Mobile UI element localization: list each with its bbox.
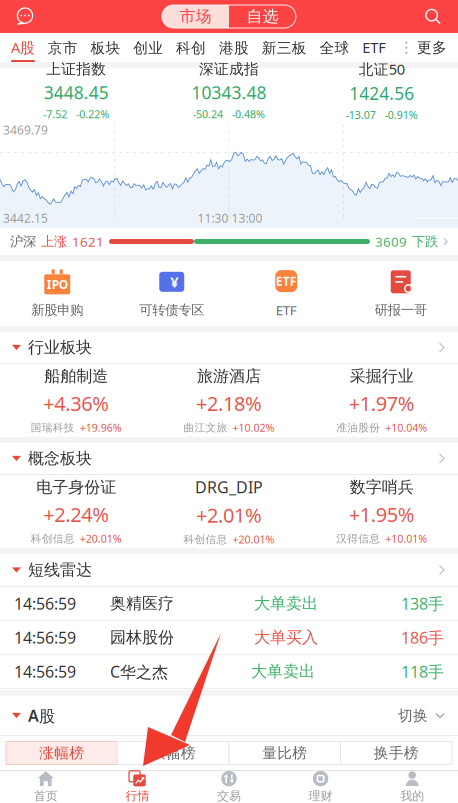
staticText: -0.91% [385,108,418,122]
staticText: 大单卖出 [251,662,315,681]
staticText: 上证指数 [46,60,106,78]
staticText: 首页 [34,789,58,803]
button[interactable]: 换手榜 [340,741,452,764]
button[interactable]: Messages [8,0,42,33]
staticText: 186手 [401,627,444,648]
button[interactable]: 交易 [183,771,275,803]
staticText: 自选 [246,7,278,26]
button[interactable]: A股 [11,33,35,62]
button[interactable]: 沪深 [0,228,458,255]
button[interactable]: 数字哨兵 [305,475,458,548]
staticText: 概念板块 [28,449,92,468]
staticText: 港股 [219,39,249,57]
button[interactable]: 涨幅榜 [6,741,117,764]
button[interactable]: ETF [229,268,343,319]
button[interactable]: 旅游酒店 [153,364,305,437]
staticText: 上涨 [41,233,67,250]
button[interactable]: 我的 [366,771,458,803]
button[interactable]: A股 [0,696,458,736]
button[interactable]: 首页 [0,771,92,803]
button[interactable]: 量比榜 [229,741,340,764]
staticText: ETF [362,37,386,57]
button[interactable]: 北证50 [305,68,458,120]
staticText: 曲江文旅 [183,421,227,434]
button[interactable]: 14:56:59 [0,655,458,689]
staticText: 市场 [179,7,211,26]
button[interactable]: 京市 [48,33,78,62]
staticText: 理财 [309,789,333,803]
button[interactable]: 板块 [91,33,121,62]
button[interactable]: 跌幅榜 [117,741,229,764]
staticText: 切换 [398,706,428,724]
staticText: -0.22% [76,107,109,121]
staticText: -50.24 [193,107,223,121]
button[interactable]: Search [416,0,450,33]
button[interactable]: ETF [362,33,386,62]
staticText: 118手 [401,661,444,682]
staticText: 14:56:59 [14,593,76,614]
button[interactable]: 创业 [133,33,163,62]
staticText: 1621 [72,233,104,250]
staticText: +1.95% [349,501,415,528]
staticText: 行业板块 [28,338,92,357]
staticText: ⋮ [399,39,414,56]
button[interactable]: 行情 [92,771,183,803]
button[interactable]: 科创 [176,33,206,62]
button[interactable]: 自选 [229,5,296,28]
staticText: 新三板 [262,39,307,57]
staticText: -13.07 [346,108,376,122]
button[interactable]: 行业板块 [0,332,458,364]
staticText: 下跌 [412,233,438,250]
staticText: +1.97% [349,390,415,417]
staticText: 汉得信息 [336,532,380,545]
staticText: 科创信息 [183,533,227,546]
button[interactable]: ¥ [114,269,229,318]
button[interactable]: 深证成指 [153,68,305,120]
button[interactable]: 港股 [219,33,249,62]
staticText: 科创 [176,39,206,57]
button[interactable]: ⋮ [399,33,447,62]
button[interactable]: 船舶制造 [0,364,153,437]
staticText: 沪深 [10,233,36,250]
staticText: 国瑞科技 [31,421,75,434]
button[interactable]: 14:56:59 [0,587,458,621]
button[interactable]: 研报一哥 [343,269,458,318]
staticText: 北证50 [359,59,405,79]
staticText: C华之杰 [110,661,168,682]
button[interactable]: 短线雷达 [0,554,458,587]
staticText: 可转债专区 [139,302,204,318]
staticText: -0.48% [232,107,265,121]
button[interactable]: 电子身份证 [0,475,153,548]
staticText: A股 [11,37,35,57]
staticText: 研报一哥 [375,302,427,318]
staticText: 板块 [91,39,121,57]
button[interactable]: 全球 [319,33,349,62]
staticText: 大单买入 [254,628,318,647]
button[interactable]: 理财 [275,771,366,803]
staticText: 准油股份 [336,421,380,434]
button[interactable]: 14:56:59 [0,621,458,655]
staticText: 数字哨兵 [350,477,414,497]
staticText: 更多 [417,38,447,56]
staticText: +20.01% [80,531,122,546]
button[interactable]: 采掘行业 [305,364,458,437]
button[interactable]: IPO [0,269,114,318]
button[interactable]: 市场 [162,5,229,28]
button[interactable]: 上证指数 [0,68,153,120]
button[interactable]: 概念板块 [0,443,458,475]
staticText: 园林股份 [110,628,174,647]
staticText: +10.04% [385,420,427,435]
staticText: 大单卖出 [254,594,318,613]
staticText: 换手榜 [374,744,419,762]
staticText: +10.01% [385,531,427,546]
button[interactable]: DRG_DIP [153,475,305,548]
button[interactable]: 新三板 [262,33,307,62]
staticText: +10.02% [232,420,274,435]
staticText: 科创信息 [31,532,75,545]
staticText: 1424.56 [349,82,414,105]
staticText: 深证成指 [199,60,259,78]
staticText: 跌幅榜 [151,744,196,762]
staticText: +2.01% [196,502,262,528]
staticText: IPO [47,276,68,292]
staticText: 京市 [48,39,78,57]
